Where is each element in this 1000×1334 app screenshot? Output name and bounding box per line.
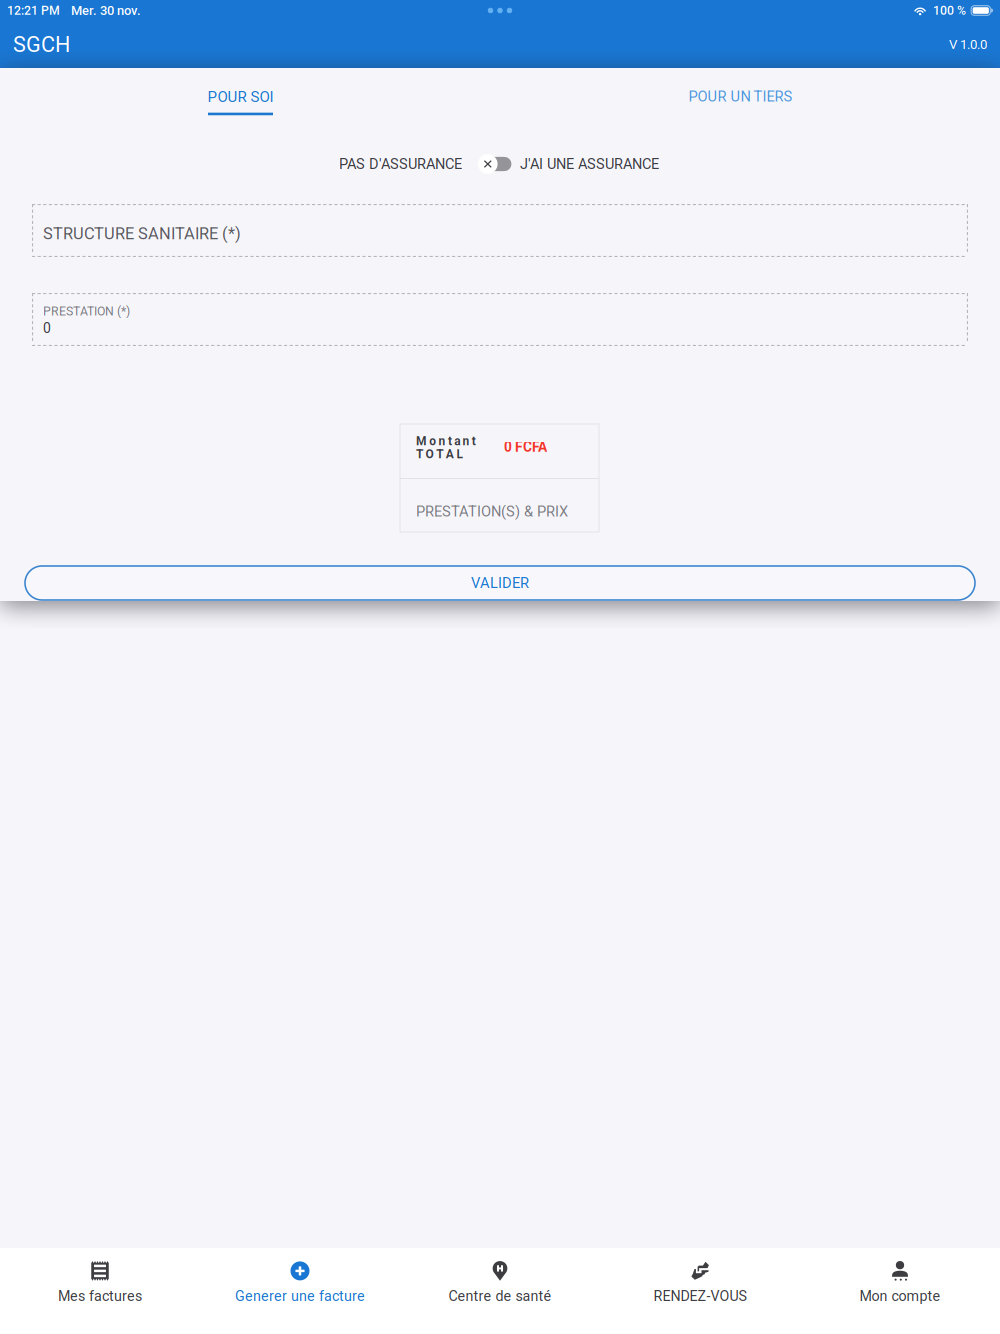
staticText: 12:21 PM [7, 3, 60, 18]
staticText: O [426, 447, 434, 461]
staticText: n [462, 434, 469, 448]
button[interactable]: Mes factures [0, 1248, 200, 1334]
button[interactable]: Generer une facture [200, 1248, 400, 1334]
button[interactable]: RENDEZ-VOUS [600, 1248, 800, 1334]
staticText: o [429, 434, 436, 448]
staticText: VALIDER [471, 574, 529, 592]
staticText: RENDEZ-VOUS [653, 1288, 746, 1304]
staticText: PRESTATION(S) & PRIX [416, 503, 568, 520]
staticText: T [416, 447, 423, 461]
button[interactable]: STRUCTURE SANITAIRE (*) [32, 204, 968, 257]
staticText: PAS D'ASSURANCE [339, 155, 462, 172]
staticText: Mer. 30 nov. [71, 3, 141, 18]
staticText: 0 [43, 320, 51, 336]
staticText: L [456, 447, 462, 461]
staticText: T [436, 447, 443, 461]
button[interactable]: POUR SOI [0, 68, 481, 118]
staticText: J'AI UNE ASSURANCE [520, 155, 659, 172]
staticText: Centre de santé [448, 1288, 551, 1304]
staticText: 0 FCFA [504, 439, 547, 455]
staticText: POUR UN TIERS [688, 88, 792, 105]
staticText: n [439, 434, 446, 448]
staticText: t [448, 434, 452, 448]
staticText: Generer une facture [235, 1288, 365, 1304]
staticText: 100 % [933, 3, 966, 18]
staticText: STRUCTURE SANITAIRE (*) [43, 224, 241, 243]
staticText: t [472, 434, 476, 448]
staticText: A [446, 447, 454, 461]
button[interactable]: PRESTATION (*) [32, 293, 968, 346]
button[interactable]: Activer l'assurance [476, 154, 509, 174]
button[interactable]: Centre de santé [400, 1248, 600, 1334]
staticText: Mon compte [859, 1288, 940, 1304]
staticText: a [454, 434, 460, 448]
staticText: Mes factures [58, 1288, 142, 1304]
staticText: SGCH [13, 32, 70, 57]
button[interactable]: POUR UN TIERS [481, 68, 1000, 118]
button[interactable]: VALIDER [25, 566, 975, 600]
staticText: V 1.0.0 [949, 37, 987, 52]
staticText: M [416, 434, 427, 448]
staticText: POUR SOI [207, 88, 273, 106]
button[interactable]: Mon compte [800, 1248, 1000, 1334]
staticText: PRESTATION (*) [43, 304, 130, 318]
